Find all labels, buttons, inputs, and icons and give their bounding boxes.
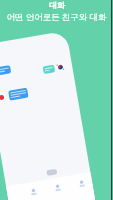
staticText: 대화 (49, 0, 65, 10)
staticText: 어떤 언어로든 친구와 대화 (6, 11, 107, 23)
